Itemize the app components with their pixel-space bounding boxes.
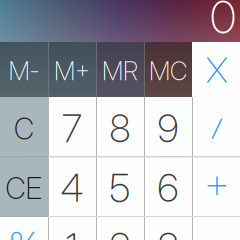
button[interactable]: MC	[144, 42, 192, 97]
staticText: C	[14, 111, 34, 146]
staticText: CE	[5, 170, 42, 206]
staticText: 8	[109, 105, 130, 152]
staticText: 7	[62, 105, 82, 152]
button[interactable]: 9	[144, 97, 192, 156]
button[interactable]: 6	[144, 156, 192, 216]
staticText: MR	[102, 56, 138, 86]
button[interactable]: 7	[48, 97, 96, 156]
staticText: 0	[210, 0, 236, 44]
staticText: %	[8, 222, 39, 240]
button[interactable]: MR	[96, 42, 144, 97]
staticText: 5	[109, 164, 130, 211]
staticText: 3	[157, 224, 178, 240]
button[interactable]: 1	[48, 216, 96, 240]
button[interactable]: Subtract	[192, 216, 240, 240]
button[interactable]: Add	[192, 156, 240, 216]
button[interactable]: %	[0, 216, 48, 240]
button[interactable]: 4	[48, 156, 96, 216]
staticText: 6	[157, 164, 178, 211]
button[interactable]: 8	[96, 97, 144, 156]
button[interactable]: CE	[0, 156, 48, 216]
button[interactable]: M+	[48, 42, 96, 97]
button[interactable]: Clear	[192, 42, 240, 97]
button[interactable]: Divide	[192, 97, 240, 156]
staticText: 9	[157, 105, 178, 152]
staticText: M-	[8, 56, 39, 86]
staticText: 2	[109, 224, 130, 240]
button[interactable]: 5	[96, 156, 144, 216]
button[interactable]: M-	[0, 42, 48, 97]
staticText: 4	[60, 164, 83, 211]
staticText: 1	[65, 224, 78, 240]
staticText: MC	[149, 56, 187, 86]
button[interactable]: 3	[144, 216, 192, 240]
button[interactable]: 2	[96, 216, 144, 240]
button[interactable]: C	[0, 97, 48, 156]
staticText: M+	[54, 56, 90, 86]
